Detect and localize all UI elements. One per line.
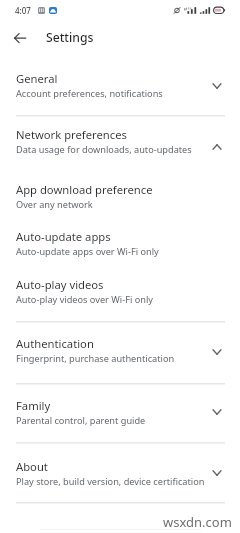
staticText: About (16, 459, 48, 474)
staticText: Settings (46, 29, 94, 46)
staticText: App download preference (16, 182, 153, 197)
button[interactable]: Family (0, 384, 240, 442)
button[interactable]: Expand (205, 461, 229, 485)
staticText: Auto-play videos (16, 277, 104, 292)
staticText: Network preferences (16, 127, 127, 142)
staticText: Over any network (16, 198, 93, 211)
staticText: wsxdn.com (163, 513, 232, 531)
button[interactable]: General (0, 56, 240, 115)
staticText: Parental control, parent guide (16, 414, 146, 427)
button[interactable]: Expand (205, 340, 229, 364)
button[interactable]: Collapse (205, 135, 229, 159)
button[interactable]: Auto-update apps (0, 218, 240, 266)
staticText: Play store, build version, device certif… (16, 475, 205, 488)
staticText: Data usage for downloads, auto-updates (16, 143, 192, 156)
button[interactable]: Authentication (0, 322, 240, 382)
button[interactable]: Expand (205, 400, 229, 424)
staticText: 4:07 (15, 5, 31, 16)
button[interactable]: App download preference (0, 171, 240, 219)
button[interactable]: Expand (205, 74, 229, 98)
button[interactable]: Back (8, 25, 32, 49)
button[interactable]: About (0, 444, 240, 502)
button[interactable]: Auto-play videos (0, 266, 240, 321)
staticText: General (16, 71, 58, 86)
staticText: Auto-play videos over Wi-Fi only (16, 293, 153, 306)
staticText: Family (16, 398, 51, 413)
staticText: Account preferences, notifications (16, 87, 163, 100)
staticText: Auto-update apps (16, 229, 111, 244)
button[interactable]: Network preferences (0, 116, 240, 170)
staticText: Authentication (16, 336, 94, 351)
staticText: Auto-update apps over Wi-Fi only (16, 245, 159, 258)
staticText: Fingerprint, purchase authentication (16, 352, 175, 365)
